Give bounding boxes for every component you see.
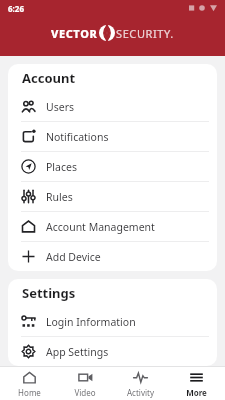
staticText: More	[186, 387, 207, 398]
staticText: Login Information	[46, 315, 136, 329]
other: More	[189, 370, 204, 385]
button[interactable]: App Settings	[8, 337, 217, 366]
staticText: Notifications	[46, 130, 109, 144]
staticText: Rules	[46, 190, 73, 204]
button[interactable]: Activity	[113, 370, 167, 398]
button[interactable]: Rules	[8, 182, 217, 212]
staticText: VECTOR	[51, 26, 98, 41]
other: Video	[78, 370, 93, 385]
staticText: Add Device	[46, 250, 101, 264]
staticText: Users	[46, 100, 74, 114]
staticText: App Settings	[46, 345, 109, 359]
staticText: SECURITY.	[116, 26, 174, 41]
button[interactable]: Add Device	[8, 242, 217, 271]
button[interactable]: Video	[58, 370, 112, 398]
staticText: Settings	[22, 284, 76, 302]
other: Home	[22, 370, 37, 385]
button[interactable]: Account Management	[8, 212, 217, 242]
button[interactable]: Login Information	[8, 307, 217, 337]
staticText: Video	[74, 387, 96, 398]
staticText: Account Management	[46, 220, 155, 234]
staticText: Account	[22, 69, 76, 87]
staticText: 6:26	[8, 3, 24, 14]
staticText: Activity	[127, 387, 154, 398]
staticText: Places	[46, 160, 77, 174]
other: Activity	[133, 370, 148, 385]
button[interactable]: Places	[8, 152, 217, 182]
button[interactable]: Notifications	[8, 122, 217, 152]
button[interactable]: Users	[8, 92, 217, 122]
staticText: Home	[18, 387, 41, 398]
button[interactable]: Home	[2, 370, 56, 398]
button[interactable]: More	[169, 370, 223, 398]
